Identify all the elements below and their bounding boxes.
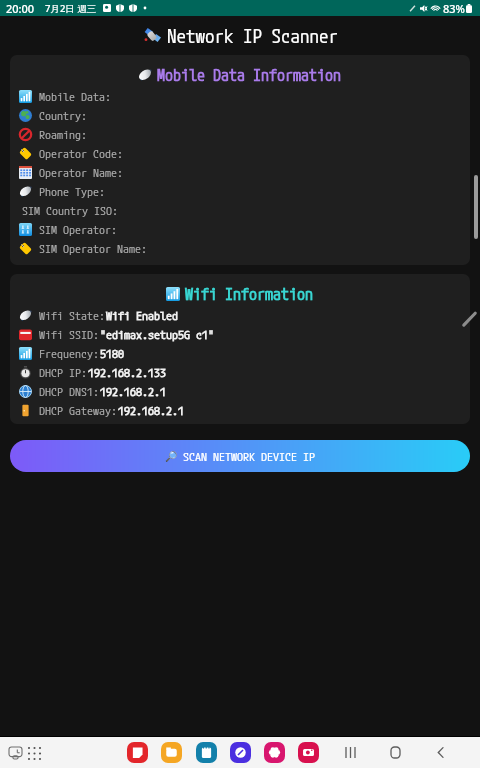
staticText: Mobile Data: xyxy=(39,89,112,104)
button[interactable]: Home xyxy=(383,740,408,765)
button[interactable]: Internet xyxy=(230,742,251,763)
staticText: DHCP DNS1: xyxy=(39,384,100,399)
staticText: 5180 xyxy=(100,346,125,361)
staticText: Wifi State: xyxy=(39,308,106,323)
staticText: 192.168.2.1 xyxy=(100,384,167,399)
staticText: DHCP Gateway: xyxy=(39,403,118,418)
staticText: "edimax.setup5G c1" xyxy=(100,327,215,342)
button[interactable]: Calendar xyxy=(196,742,217,763)
staticText: Wifi Enabled xyxy=(106,308,179,323)
staticText: 🔎 xyxy=(165,451,178,463)
staticText: 83% xyxy=(443,1,465,16)
staticText: Frequency: xyxy=(39,346,100,361)
staticText: Country: xyxy=(39,108,88,123)
staticText: 20:00 xyxy=(6,1,35,16)
staticText: Operator Code: xyxy=(39,146,124,161)
button[interactable]: My Files xyxy=(161,742,182,763)
staticText: SIM Country ISO: xyxy=(22,203,119,218)
button[interactable]: Back xyxy=(428,740,453,765)
button[interactable]: Gallery xyxy=(264,742,285,763)
staticText: 7月2日 週三 xyxy=(45,2,97,15)
staticText: Roaming: xyxy=(39,127,88,142)
staticText: Mobile Data Information xyxy=(157,65,342,85)
staticText: 192.168.2.133 xyxy=(88,365,167,380)
button[interactable]: Recents xyxy=(338,740,363,765)
button[interactable]: 🔎 xyxy=(10,440,470,472)
staticText: Network IP Scanner xyxy=(167,24,339,47)
button[interactable]: Samsung Notes xyxy=(127,742,148,763)
staticText: 192.168.2.1 xyxy=(118,403,185,418)
staticText: SCAN NETWORK DEVICE IP xyxy=(183,449,316,464)
staticText: SIM Operator Name: xyxy=(39,241,148,256)
staticText: Operator Name: xyxy=(39,165,124,180)
staticText: Wifi Information xyxy=(185,284,314,304)
staticText: Phone Type: xyxy=(39,184,106,199)
staticText: DHCP IP: xyxy=(39,365,88,380)
staticText: Wifi SSID: xyxy=(39,327,100,342)
button[interactable]: Camera xyxy=(298,742,319,763)
button[interactable]: All apps xyxy=(22,741,46,765)
button[interactable]: DeX mode xyxy=(3,741,27,765)
staticText: SIM Operator: xyxy=(39,222,118,237)
